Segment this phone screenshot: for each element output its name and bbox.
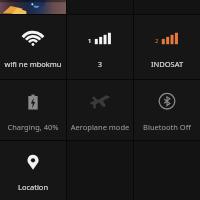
staticText: wifi ne mbokmu bbox=[3, 59, 63, 69]
staticText: Charging, 40% bbox=[3, 122, 63, 132]
staticText: Location bbox=[3, 182, 63, 192]
button[interactable]: SIM 2 signal bbox=[134, 15, 200, 79]
button[interactable]: Battery bbox=[0, 80, 66, 140]
staticText: Aeroplane mode bbox=[70, 122, 130, 132]
button[interactable]: Aeroplane mode bbox=[67, 80, 133, 140]
button[interactable]: Wi-Fi bbox=[0, 15, 66, 79]
button[interactable]: Bluetooth bbox=[134, 80, 200, 140]
button[interactable]: Location bbox=[0, 141, 66, 200]
button[interactable]: Screenshot preview bbox=[0, 0, 66, 14]
button[interactable]: SIM 1 signal bbox=[67, 15, 133, 79]
staticText: 3 bbox=[70, 59, 130, 69]
staticText: 2 bbox=[155, 37, 159, 45]
staticText: INDOSAT bbox=[137, 59, 197, 69]
staticText: 1 bbox=[88, 37, 92, 45]
staticText: Bluetooth Off bbox=[137, 122, 197, 132]
